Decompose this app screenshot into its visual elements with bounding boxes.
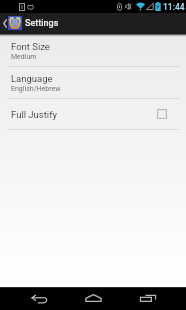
staticText: English/Hebrew [11,85,61,93]
staticText: Settings [25,18,59,29]
button[interactable]: Language [0,67,186,98]
button[interactable]: Navigate up [0,13,186,34]
button[interactable]: Full Justify [0,99,186,129]
other: Navigate up [3,19,7,28]
staticText: Full Justify [11,109,57,120]
button[interactable]: Recent apps [117,288,178,307]
button[interactable]: Font Size [0,35,186,66]
staticText: 11:44 [163,2,185,12]
staticText: Medium [11,53,37,61]
button[interactable]: Home [63,288,124,307]
staticText: Font Size [11,41,50,52]
button[interactable]: Back [8,289,69,308]
staticText: Language [11,73,53,84]
